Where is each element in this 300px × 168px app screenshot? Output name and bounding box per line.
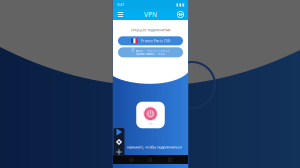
- staticText: нажмите, чтобы подключиться: [127, 144, 182, 150]
- staticText: ◁: [129, 157, 132, 162]
- staticText: France Paris (10): [141, 38, 170, 43]
- staticText: ▮ ▮ ▮: [176, 2, 184, 7]
- staticText: 9:41: [117, 2, 124, 7]
- staticText: ○: [148, 157, 151, 162]
- button[interactable]: Settings: [115, 138, 122, 145]
- staticText: IP адрес: 185.51.134.22: [131, 49, 169, 52]
- staticText: текущее подключение: [130, 27, 170, 32]
- button[interactable]: Power on VPN: [136, 102, 165, 128]
- button[interactable]: Menu: [115, 9, 126, 20]
- button[interactable]: Change language: [175, 9, 186, 20]
- staticText: OFF: [148, 122, 152, 125]
- button[interactable]: France Paris (10): [118, 36, 183, 45]
- button[interactable]: Move: [115, 148, 122, 155]
- staticText: Время сессии: 0:00: [136, 52, 165, 56]
- button[interactable]: Play: [115, 128, 123, 135]
- staticText: □: [168, 157, 172, 162]
- staticText: VPN: [144, 10, 157, 19]
